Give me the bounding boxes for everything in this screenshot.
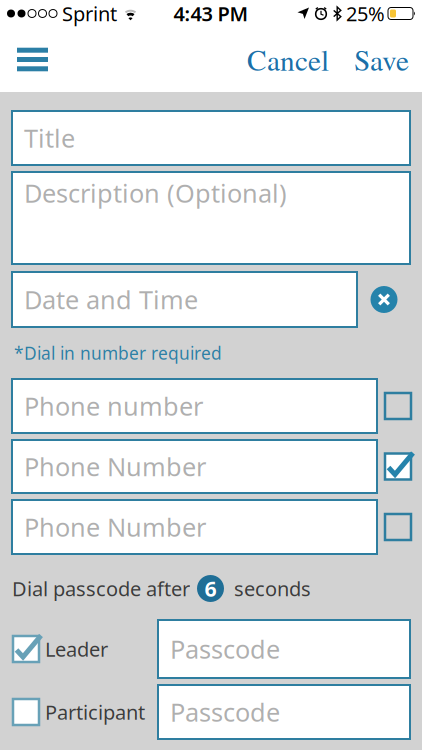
staticText: Passcode: [170, 695, 280, 729]
staticText: Leader: [45, 636, 108, 662]
button[interactable]: Phone number: [12, 379, 377, 433]
button[interactable]: Description (Optional): [12, 172, 410, 264]
button[interactable]: Leader selected: [13, 636, 39, 662]
staticText: Passcode: [170, 632, 280, 666]
button[interactable]: Passcode: [158, 620, 410, 678]
staticText: Date and Time: [24, 283, 198, 316]
staticText: seconds: [234, 575, 311, 602]
button[interactable]: Date and Time: [12, 272, 357, 327]
staticText: Description (Optional): [24, 176, 287, 210]
staticText: Phone number: [24, 389, 203, 423]
staticText: *Dial in number required: [14, 341, 222, 364]
button[interactable]: Menu: [17, 48, 48, 71]
staticText: 6: [204, 574, 216, 603]
button[interactable]: Save: [329, 40, 409, 79]
staticText: Phone Number: [24, 510, 206, 544]
staticText: Sprint: [62, 0, 117, 27]
button[interactable]: Selected: [385, 453, 411, 479]
button[interactable]: Phone Number: [12, 440, 377, 493]
staticText: Title: [24, 121, 75, 155]
button[interactable]: Passcode: [158, 685, 410, 739]
button[interactable]: Cancel: [247, 40, 329, 79]
staticText: Dial passcode after: [12, 575, 190, 602]
staticText: Save: [354, 40, 409, 79]
button[interactable]: Phone Number: [12, 500, 377, 554]
button[interactable]: Not selected: [385, 514, 411, 540]
staticText: 4:43 PM: [173, 0, 248, 27]
staticText: Cancel: [247, 40, 329, 79]
staticText: Phone Number: [24, 450, 206, 483]
button[interactable]: Not selected: [385, 393, 411, 419]
button[interactable]: Clear date: [370, 286, 397, 313]
staticText: Participant: [45, 699, 145, 725]
staticText: 25%: [346, 0, 385, 27]
button[interactable]: Participant not selected: [13, 699, 39, 725]
button[interactable]: Title: [12, 111, 410, 165]
